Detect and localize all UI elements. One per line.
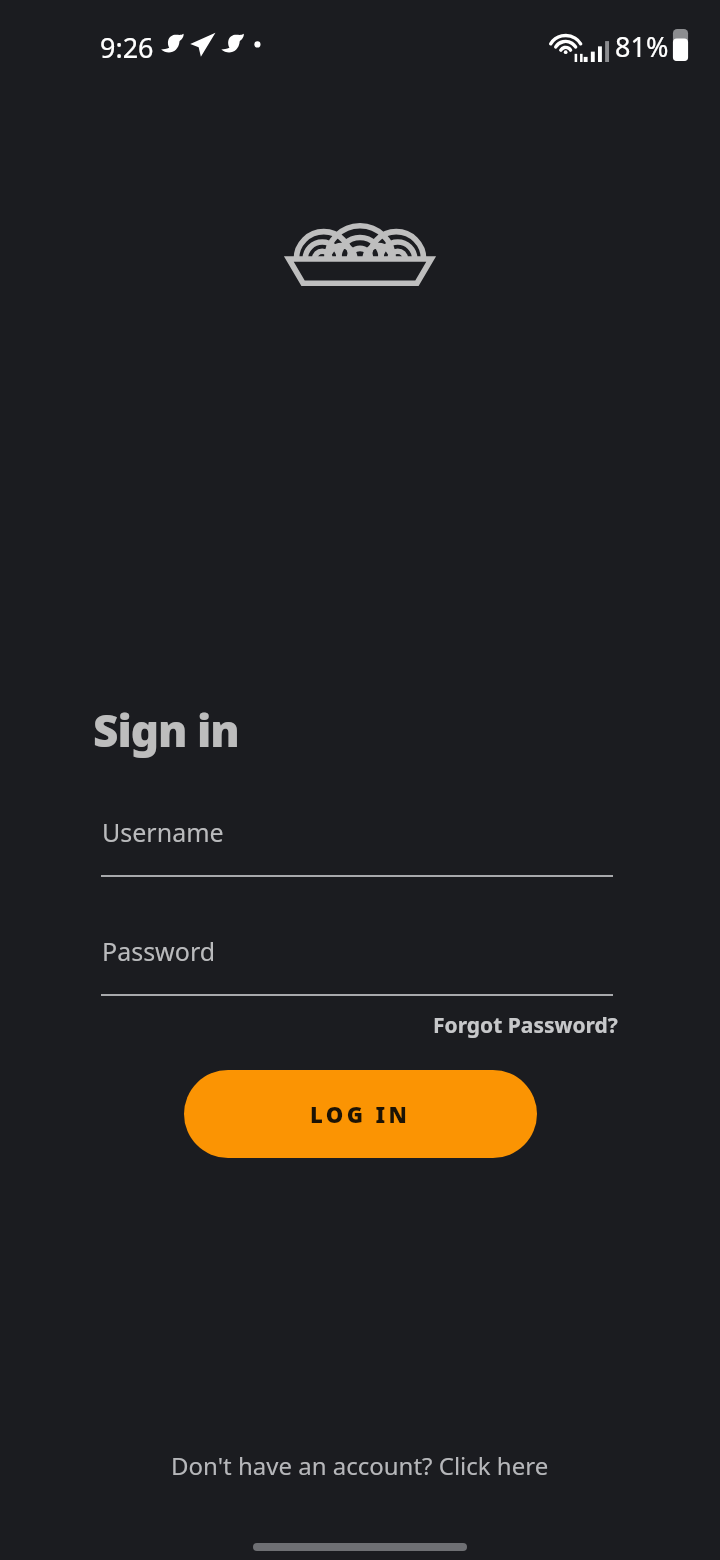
staticText: LOG IN (310, 1099, 411, 1129)
staticText: Username (102, 815, 224, 849)
staticText: Forgot Password? (433, 1011, 618, 1040)
button[interactable]: Forgot Password? (430, 1008, 621, 1043)
staticText: 9:26 (100, 29, 154, 66)
button[interactable]: Don't have an account? Click here (163, 1444, 557, 1487)
other: App logo (286, 214, 434, 286)
button[interactable]: Password (101, 934, 613, 996)
button[interactable]: Username (101, 815, 613, 877)
staticText: Sign in (93, 700, 239, 760)
staticText: Don't have an account? Click here (171, 1449, 549, 1482)
staticText: Password (102, 934, 216, 968)
button[interactable]: LOG IN (184, 1070, 537, 1158)
staticText: 81% (615, 28, 669, 65)
